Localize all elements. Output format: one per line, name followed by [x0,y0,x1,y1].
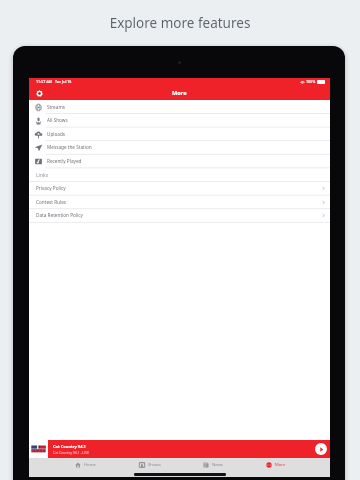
staticText: More [275,462,286,468]
button[interactable]: Shows [138,461,162,469]
button[interactable]: News [202,461,224,469]
button[interactable]: Recently Played [29,154,330,168]
staticText: 100% [306,79,316,84]
staticText: More [172,89,187,97]
staticText: Message the Station [47,144,92,150]
button[interactable]: Settings [34,88,45,99]
staticText: All Shows [47,117,68,123]
button[interactable]: Play [315,443,327,455]
button[interactable]: Home [74,461,97,469]
staticText: Cat Country 94.1 [53,444,86,449]
button[interactable]: Privacy Policy [29,181,330,195]
staticText: Shows [148,462,161,468]
button[interactable]: Cat Country 94.1 [29,440,330,458]
staticText: Explore more features [0,14,360,32]
staticText: Links [36,172,49,179]
staticText: Tue Jul 16 [55,79,72,84]
staticText: Cat Country 94.1 - LIVE [53,450,90,455]
staticText: Streams [47,104,66,110]
staticText: Home [84,462,96,468]
staticText: Uploads [47,131,66,137]
button[interactable]: All Shows [29,113,330,127]
button[interactable]: Streams [29,100,330,114]
staticText: Recently Played [47,158,82,164]
button[interactable]: Data Retention Policy [29,208,330,222]
button[interactable]: Uploads [29,127,330,141]
staticText: Contest Rules [36,199,67,205]
staticText: Privacy Policy [36,185,66,191]
button[interactable]: Message the Station [29,140,330,154]
staticText: News [212,462,223,468]
button[interactable]: Contest Rules [29,195,330,209]
staticText: 11:57 AM [36,79,52,84]
button[interactable]: More [265,461,287,469]
staticText: Data Retention Policy [36,212,83,218]
